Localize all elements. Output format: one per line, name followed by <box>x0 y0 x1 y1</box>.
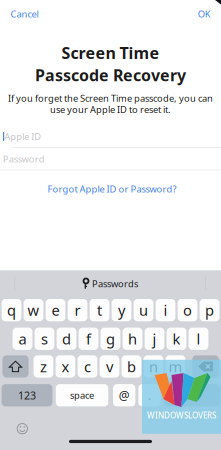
button[interactable]: d <box>57 328 76 350</box>
staticText: use your Apple ID to reset it. <box>50 103 171 116</box>
staticText: m <box>168 357 182 376</box>
button[interactable]: Shift <box>2 355 29 378</box>
staticText: j <box>152 329 156 348</box>
staticText: Passwords <box>92 277 138 290</box>
button[interactable]: f <box>79 328 98 350</box>
button[interactable]: 123 <box>2 384 52 406</box>
button[interactable]: e <box>46 299 65 321</box>
button[interactable]: space <box>56 384 108 406</box>
staticText: h <box>128 329 137 348</box>
button[interactable]: Forgot Apple ID or Password? <box>42 179 181 199</box>
staticText: v <box>106 357 113 376</box>
staticText: t <box>97 300 102 320</box>
button[interactable]: v <box>100 355 119 378</box>
button[interactable]: n <box>144 355 163 378</box>
staticText: WINDOWSLOVERS <box>147 410 216 421</box>
staticText: k <box>172 329 180 348</box>
button[interactable]: y <box>112 299 131 321</box>
button[interactable]: t <box>90 299 109 321</box>
staticText: Apple ID <box>4 130 41 143</box>
button[interactable]: m <box>166 355 185 378</box>
button[interactable]: k <box>167 328 186 350</box>
staticText: s <box>41 329 48 348</box>
staticText: @ <box>119 387 130 403</box>
button[interactable]: l <box>189 328 208 350</box>
staticText: 123 <box>18 388 36 402</box>
staticText: f <box>86 329 91 348</box>
staticText: x <box>61 357 69 376</box>
staticText: n <box>149 357 158 376</box>
button[interactable]: Passwords <box>77 273 144 294</box>
button[interactable]: i <box>156 299 175 321</box>
staticText: l <box>196 329 200 348</box>
button[interactable]: Delete <box>192 355 219 378</box>
button[interactable]: r <box>68 299 87 321</box>
staticText: z <box>40 357 47 376</box>
staticText: q <box>7 300 16 320</box>
staticText: space <box>70 389 94 401</box>
button[interactable]: j <box>145 328 164 350</box>
staticText: b <box>127 357 136 376</box>
button[interactable]: @ <box>113 384 135 406</box>
staticText: g <box>106 329 115 348</box>
button[interactable]: z <box>34 355 53 378</box>
button[interactable]: p <box>200 299 219 321</box>
staticText: OK <box>198 8 211 20</box>
button[interactable]: q <box>2 299 21 321</box>
button[interactable]: w <box>24 299 43 321</box>
button[interactable]: Go <box>164 384 220 406</box>
staticText: r <box>74 300 80 320</box>
button[interactable]: Emoji keyboard <box>13 420 31 438</box>
staticText: u <box>139 300 148 320</box>
staticText: p <box>205 300 214 320</box>
staticText: o <box>183 300 192 320</box>
staticText: y <box>118 300 125 320</box>
staticText: Cancel <box>11 8 39 20</box>
button[interactable]: . <box>138 384 161 406</box>
button[interactable]: Cancel <box>7 4 43 24</box>
staticText: i <box>163 300 167 320</box>
button[interactable]: g <box>101 328 120 350</box>
button[interactable]: a <box>13 328 32 350</box>
staticText: Passcode Recovery <box>35 64 186 86</box>
button[interactable]: h <box>123 328 142 350</box>
button[interactable]: o <box>178 299 197 321</box>
button[interactable]: x <box>56 355 75 378</box>
staticText: Screen Time <box>61 42 159 63</box>
staticText: Forgot Apple ID or Password? <box>47 183 176 195</box>
button[interactable]: c <box>78 355 97 378</box>
staticText: d <box>62 329 71 348</box>
staticText: Password <box>3 153 45 165</box>
staticText: . <box>148 387 151 403</box>
staticText: Go <box>185 388 199 402</box>
button[interactable]: b <box>122 355 141 378</box>
staticText: e <box>51 300 59 320</box>
staticText: If you forget the Screen Time passcode, … <box>8 92 213 104</box>
button[interactable]: u <box>134 299 153 321</box>
button[interactable]: s <box>35 328 54 350</box>
button[interactable]: OK <box>194 4 215 24</box>
staticText: c <box>84 357 91 376</box>
staticText: w <box>27 300 39 320</box>
staticText: a <box>18 329 26 348</box>
